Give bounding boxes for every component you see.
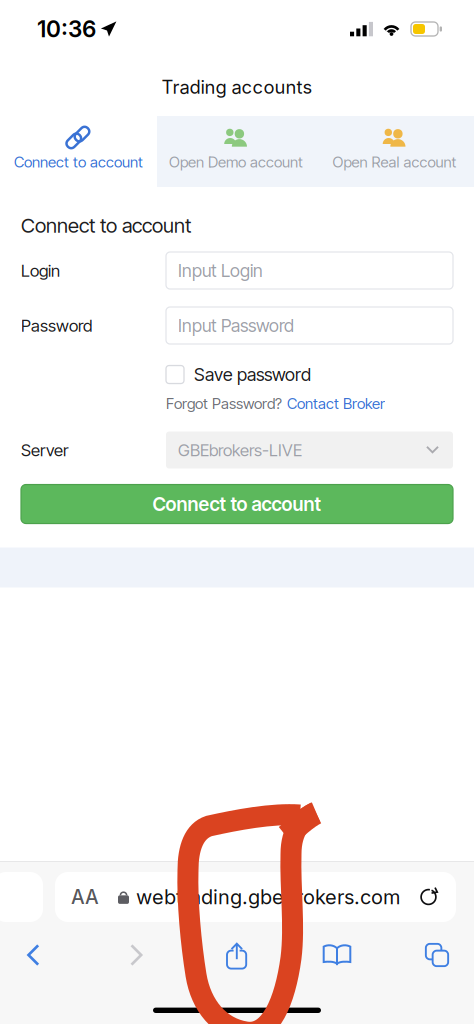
staticText: Connect to account — [21, 213, 191, 237]
staticText: Password — [21, 315, 92, 336]
button[interactable]: Save password — [166, 363, 453, 385]
staticText: GBEbrokers-LIVE — [178, 440, 302, 460]
button[interactable]: Share — [206, 922, 268, 988]
staticText: 10:36 — [37, 15, 96, 43]
button[interactable]: Connect to account — [0, 116, 157, 187]
staticText: Input Login — [178, 260, 263, 281]
staticText: AA — [71, 885, 99, 909]
staticText: Open Real account — [332, 153, 456, 171]
button[interactable]: Back — [0, 922, 68, 988]
button[interactable]: GBEbrokers-LIVE — [166, 431, 453, 468]
staticText: Open Demo account — [169, 153, 303, 171]
button[interactable]: Bookmarks — [268, 922, 406, 988]
staticText: Trading accounts — [161, 76, 312, 98]
staticText: webtrading.gbebrokers.com — [136, 885, 400, 909]
staticText: Input Password — [178, 315, 294, 336]
staticText: Connect to account — [152, 492, 321, 516]
button[interactable]: Forward — [68, 922, 206, 988]
button[interactable]: Contact Broker — [282, 394, 385, 413]
staticText: Save password — [194, 364, 311, 385]
staticText: Contact Broker — [287, 394, 385, 413]
button[interactable]: Tabs — [406, 922, 468, 988]
staticText: Connect to account — [14, 153, 143, 171]
button[interactable]: Address — [55, 872, 456, 922]
staticText: Forgot Password? — [166, 394, 282, 413]
button[interactable]: Open Real account — [315, 116, 474, 187]
button[interactable]: Open Demo account — [157, 116, 315, 187]
staticText: Server — [21, 440, 68, 460]
button[interactable]: Connect to account — [21, 484, 453, 523]
staticText: Login — [21, 260, 60, 281]
